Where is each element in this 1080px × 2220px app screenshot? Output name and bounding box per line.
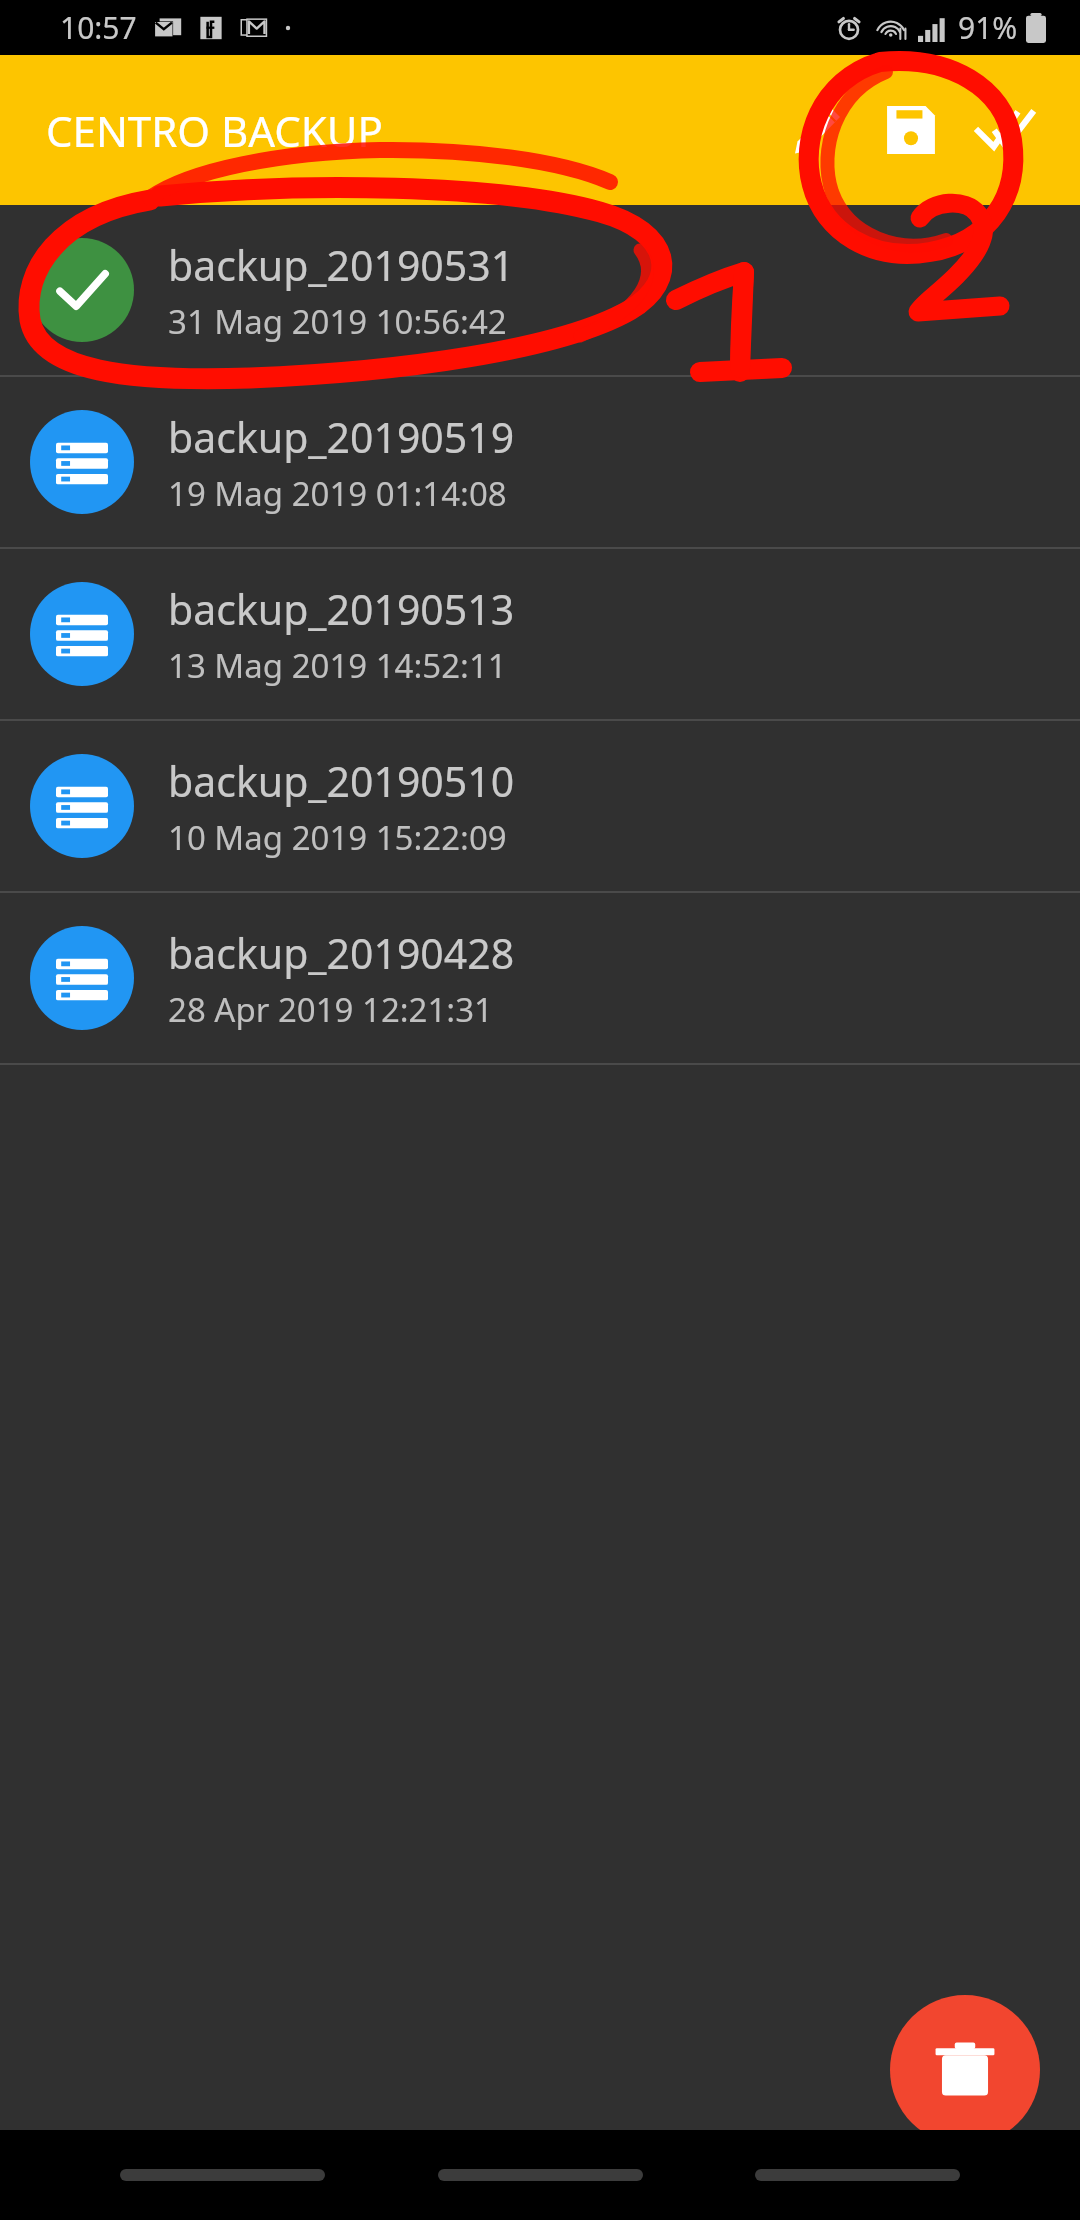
button[interactable] xyxy=(120,2169,325,2181)
button[interactable] xyxy=(755,2169,960,2181)
staticText: 28 Apr 2019 12:21:31 xyxy=(168,987,493,1032)
button[interactable]: backup_20190531 xyxy=(0,205,1080,375)
button[interactable]: backup_20190510 xyxy=(0,721,1080,891)
staticText: 13 Mag 2019 14:52:11 xyxy=(168,643,507,688)
button[interactable]: Save backup xyxy=(864,83,958,177)
button[interactable]: Select all xyxy=(958,83,1052,177)
staticText: backup_20190428 xyxy=(168,925,515,981)
staticText: backup_20190510 xyxy=(168,753,515,809)
button[interactable]: backup_20190519 xyxy=(0,377,1080,547)
button[interactable]: backup_20190428 xyxy=(0,893,1080,1063)
staticText: 91% xyxy=(958,7,1018,48)
staticText: CENTRO BACKUP xyxy=(46,102,383,159)
button[interactable]: Delete selected backups xyxy=(890,1995,1040,2145)
button[interactable] xyxy=(438,2169,643,2181)
button[interactable]: Rename backup xyxy=(770,83,864,177)
staticText: backup_20190513 xyxy=(168,581,515,637)
button[interactable]: backup_20190513 xyxy=(0,549,1080,719)
staticText: 19 Mag 2019 01:14:08 xyxy=(168,471,507,516)
staticText: 10 Mag 2019 15:22:09 xyxy=(168,815,507,860)
staticText: backup_20190519 xyxy=(168,409,515,465)
staticText: 10:57 xyxy=(60,7,137,48)
staticText: backup_20190531 xyxy=(168,237,515,293)
staticText: 31 Mag 2019 10:56:42 xyxy=(168,299,507,344)
